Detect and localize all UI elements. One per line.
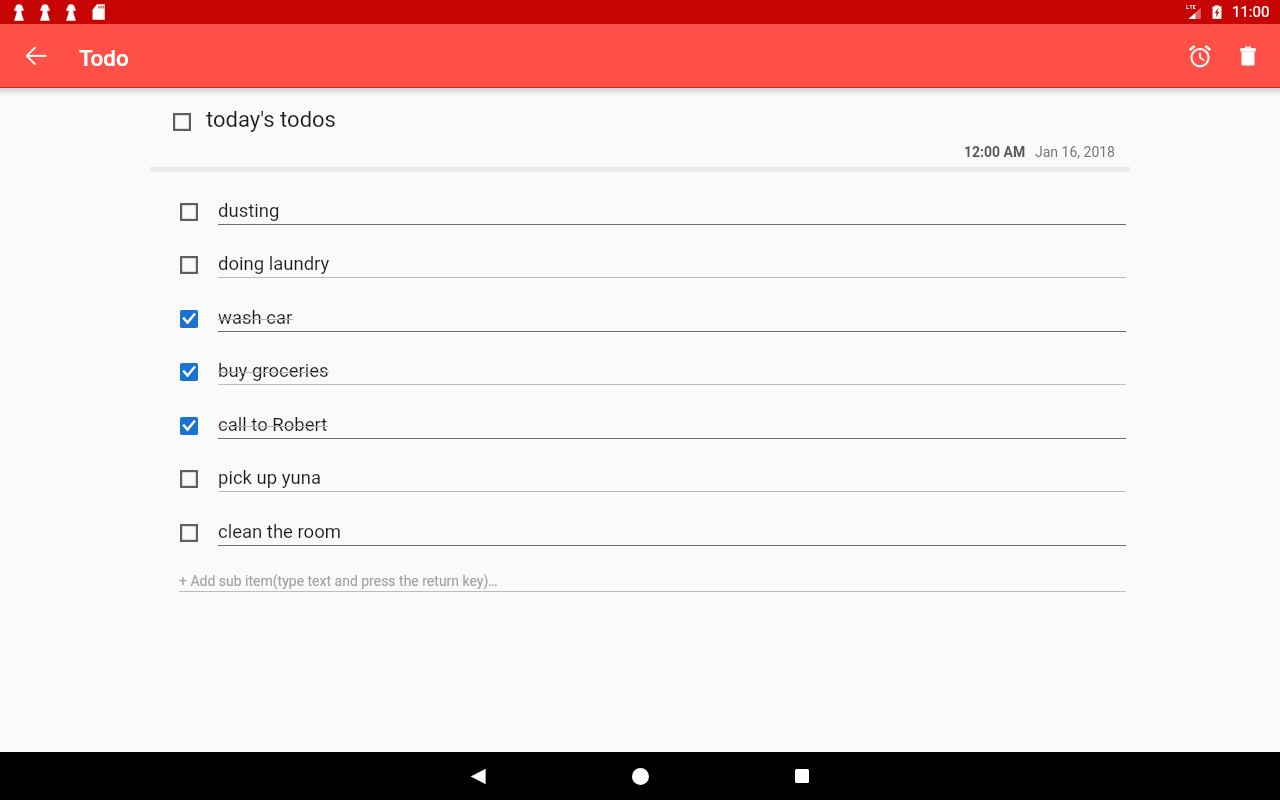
button[interactable]: today's todos: [173, 105, 336, 139]
button[interactable]: wash car: [180, 292, 1127, 345]
button[interactable]: Set alarm: [1176, 32, 1224, 80]
button[interactable]: clean the room: [180, 506, 1127, 559]
staticText: Todo: [79, 45, 129, 71]
button[interactable]: call to Robert: [180, 399, 1127, 452]
staticText: pick up yuna: [218, 467, 321, 489]
button[interactable]: Recent apps: [778, 752, 826, 800]
button[interactable]: + Add sub item(type text and press the r…: [179, 562, 1127, 598]
button[interactable]: pick up yuna: [180, 452, 1127, 505]
button[interactable]: Home: [616, 752, 664, 800]
button[interactable]: Back: [454, 752, 502, 800]
staticText: wash car: [218, 307, 293, 329]
staticText: Jan 16, 2018: [1035, 144, 1115, 160]
button[interactable]: dusting: [180, 185, 1127, 238]
staticText: today's todos: [206, 107, 336, 133]
button[interactable]: Delete: [1224, 32, 1272, 80]
staticText: + Add sub item(type text and press the r…: [179, 573, 498, 589]
button[interactable]: doing laundry: [180, 238, 1127, 291]
staticText: doing laundry: [218, 253, 330, 275]
staticText: 12:00 AM: [964, 144, 1026, 160]
staticText: buy groceries: [218, 360, 329, 382]
staticText: call to Robert: [218, 414, 328, 436]
staticText: clean the room: [218, 521, 341, 543]
button[interactable]: buy groceries: [180, 345, 1127, 398]
button[interactable]: Back: [12, 32, 60, 80]
staticText: dusting: [218, 200, 280, 222]
staticText: 11:00: [1232, 3, 1270, 21]
